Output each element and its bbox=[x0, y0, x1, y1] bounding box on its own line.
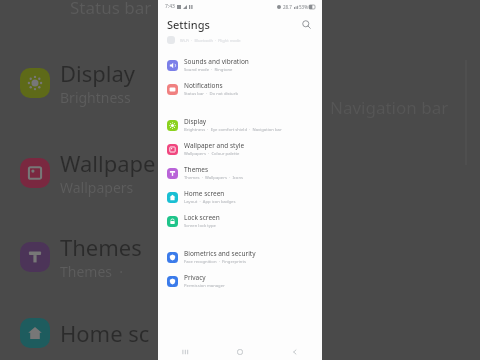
staticText: Privacy bbox=[184, 273, 206, 282]
button[interactable]: Back bbox=[267, 344, 322, 360]
button[interactable]: Themes bbox=[158, 161, 322, 185]
button[interactable]: Recents bbox=[158, 344, 212, 360]
staticText: Screen lock type bbox=[184, 223, 216, 229]
staticText: Wi-Fi · Bluetooth · Flight mode bbox=[180, 38, 241, 43]
staticText: Display bbox=[184, 117, 207, 126]
staticText: Face recognition · Fingerprints bbox=[184, 259, 246, 265]
staticText: Biometrics and security bbox=[184, 249, 256, 258]
staticText: Status bar · Do not disturb bbox=[184, 91, 238, 97]
button[interactable]: Privacy bbox=[158, 269, 322, 293]
button[interactable]: Home screen bbox=[158, 185, 322, 209]
staticText: Wallpapers bbox=[60, 178, 134, 197]
staticText: Home screen bbox=[184, 189, 225, 198]
button[interactable]: Wallpaper and style bbox=[158, 137, 322, 161]
staticText: Permission manager bbox=[184, 283, 225, 289]
staticText: Sound mode · Ringtone bbox=[184, 67, 233, 73]
button[interactable]: Display bbox=[158, 113, 322, 137]
staticText: Lock screen bbox=[184, 213, 220, 222]
staticText: Themes bbox=[184, 165, 209, 174]
staticText: 7:43 bbox=[165, 3, 175, 10]
staticText: Wallpaper and style bbox=[184, 141, 245, 150]
staticText: Themes · Wallpapers · Icons bbox=[184, 175, 243, 181]
button[interactable]: Lock screen bbox=[158, 209, 322, 233]
staticText: Notifications bbox=[184, 81, 223, 90]
staticText: Brightness · Eye comfort shield · Naviga… bbox=[184, 127, 282, 133]
staticText: Sounds and vibration bbox=[184, 57, 249, 66]
button[interactable]: Search bbox=[298, 16, 314, 32]
staticText: Themes · bbox=[60, 262, 124, 281]
staticText: Themes bbox=[60, 232, 142, 262]
staticText: Brightness bbox=[60, 88, 131, 107]
staticText: Navigation bar bbox=[330, 96, 449, 119]
staticText: Status bar bbox=[70, 0, 152, 19]
button[interactable]: Notifications bbox=[158, 77, 322, 101]
staticText: Layout · App icon badges bbox=[184, 199, 236, 205]
staticText: Settings bbox=[167, 17, 210, 32]
button[interactable]: Home bbox=[212, 344, 267, 360]
staticText: Home sc bbox=[60, 318, 150, 348]
staticText: 53% bbox=[299, 4, 308, 10]
button[interactable]: Biometrics and security bbox=[158, 245, 322, 269]
staticText: Wallpape bbox=[60, 148, 156, 178]
staticText: Display bbox=[60, 58, 136, 88]
staticText: Wallpapers · Colour palette bbox=[184, 151, 240, 157]
staticText: 28.7 bbox=[283, 4, 292, 10]
button[interactable]: Sounds and vibration bbox=[158, 53, 322, 77]
